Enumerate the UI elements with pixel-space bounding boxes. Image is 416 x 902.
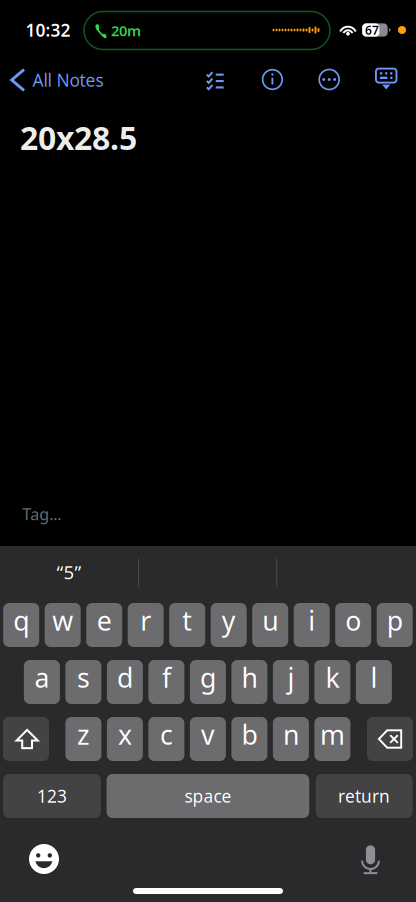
staticText: 123 — [37, 784, 67, 807]
staticText: u — [262, 603, 278, 638]
staticText: space — [184, 784, 231, 807]
staticText: g — [200, 660, 216, 695]
staticText: s — [77, 660, 90, 695]
button[interactable]: z — [65, 717, 101, 761]
button[interactable]: b — [231, 717, 267, 761]
button[interactable]: Emoji — [22, 837, 66, 881]
staticText: r — [140, 603, 151, 638]
staticText: a — [34, 660, 49, 695]
button[interactable]: c — [148, 717, 184, 761]
staticText: d — [117, 660, 133, 695]
staticText: v — [201, 717, 215, 752]
staticText: return — [338, 784, 390, 807]
staticText: All Notes — [32, 68, 103, 91]
button[interactable]: x — [107, 717, 143, 761]
staticText: x — [118, 717, 132, 752]
staticText: z — [77, 717, 90, 752]
button[interactable]: space — [107, 774, 309, 818]
button[interactable]: m — [314, 717, 350, 761]
button[interactable]: o — [335, 603, 371, 647]
button[interactable]: Checklist — [193, 57, 237, 101]
button[interactable]: t — [169, 603, 205, 647]
button[interactable]: More — [307, 57, 351, 101]
button[interactable]: l — [356, 660, 392, 704]
button[interactable]: Tag... — [16, 496, 67, 532]
button[interactable]: d — [107, 660, 143, 704]
button[interactable]: a — [24, 660, 60, 704]
button[interactable]: Dictate — [348, 837, 392, 881]
button[interactable]: f — [148, 660, 184, 704]
button[interactable]: Delete — [367, 717, 413, 761]
button[interactable]: u — [252, 603, 288, 647]
staticText: w — [52, 603, 73, 638]
button[interactable]: All Notes — [2, 56, 112, 103]
button[interactable]: Hide Keyboard — [364, 57, 408, 101]
button[interactable]: n — [273, 717, 309, 761]
staticText: f — [162, 660, 171, 695]
staticText: 10:32 — [25, 18, 70, 41]
staticText: q — [13, 603, 29, 638]
staticText: “5” — [56, 560, 81, 584]
staticText: 20m — [111, 21, 141, 40]
staticText: k — [325, 660, 339, 695]
staticText: e — [97, 603, 112, 638]
staticText: b — [241, 717, 257, 752]
staticText: 67 — [365, 22, 379, 38]
button[interactable]: Shift — [3, 717, 49, 761]
staticText: i — [308, 603, 315, 638]
staticText: n — [283, 717, 299, 752]
button[interactable]: Info — [250, 57, 294, 101]
staticText: Tag... — [22, 503, 61, 525]
button[interactable]: j — [273, 660, 309, 704]
button[interactable]: q — [3, 603, 39, 647]
button[interactable]: v — [190, 717, 226, 761]
staticText: 20x28.5 — [20, 116, 137, 159]
staticText: h — [241, 660, 257, 695]
button[interactable]: i — [294, 603, 330, 647]
button[interactable]: p — [377, 603, 413, 647]
button[interactable]: “5” — [0, 554, 138, 590]
staticText: l — [370, 660, 377, 695]
button[interactable]: h — [231, 660, 267, 704]
button[interactable]: r — [128, 603, 164, 647]
staticText: m — [320, 717, 345, 752]
staticText: y — [222, 603, 236, 638]
staticText: p — [387, 603, 403, 638]
button[interactable]: g — [190, 660, 226, 704]
staticText: j — [287, 660, 294, 695]
button[interactable]: 123 — [3, 774, 101, 818]
button[interactable]: y — [211, 603, 247, 647]
button[interactable]: e — [86, 603, 122, 647]
staticText: c — [160, 717, 173, 752]
button[interactable]: w — [45, 603, 81, 647]
button[interactable]: k — [314, 660, 350, 704]
button[interactable]: return — [316, 774, 412, 818]
button[interactable]: s — [65, 660, 101, 704]
staticText: o — [345, 603, 361, 638]
staticText: t — [182, 603, 192, 638]
